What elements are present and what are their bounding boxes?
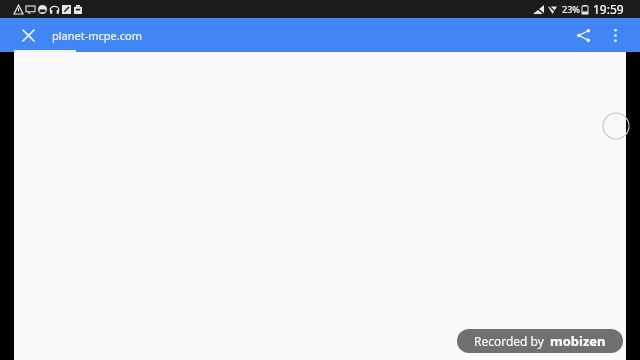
staticText: mobizen xyxy=(550,332,606,350)
staticText: Recorded by xyxy=(474,333,544,349)
button[interactable]: planet-mcpe.com xyxy=(52,28,142,43)
button[interactable]: More options xyxy=(600,20,630,50)
button[interactable]: Close xyxy=(14,21,42,49)
staticText: 19:59 xyxy=(593,1,624,17)
button[interactable]: Share xyxy=(566,18,600,52)
staticText: 23% xyxy=(562,3,580,15)
